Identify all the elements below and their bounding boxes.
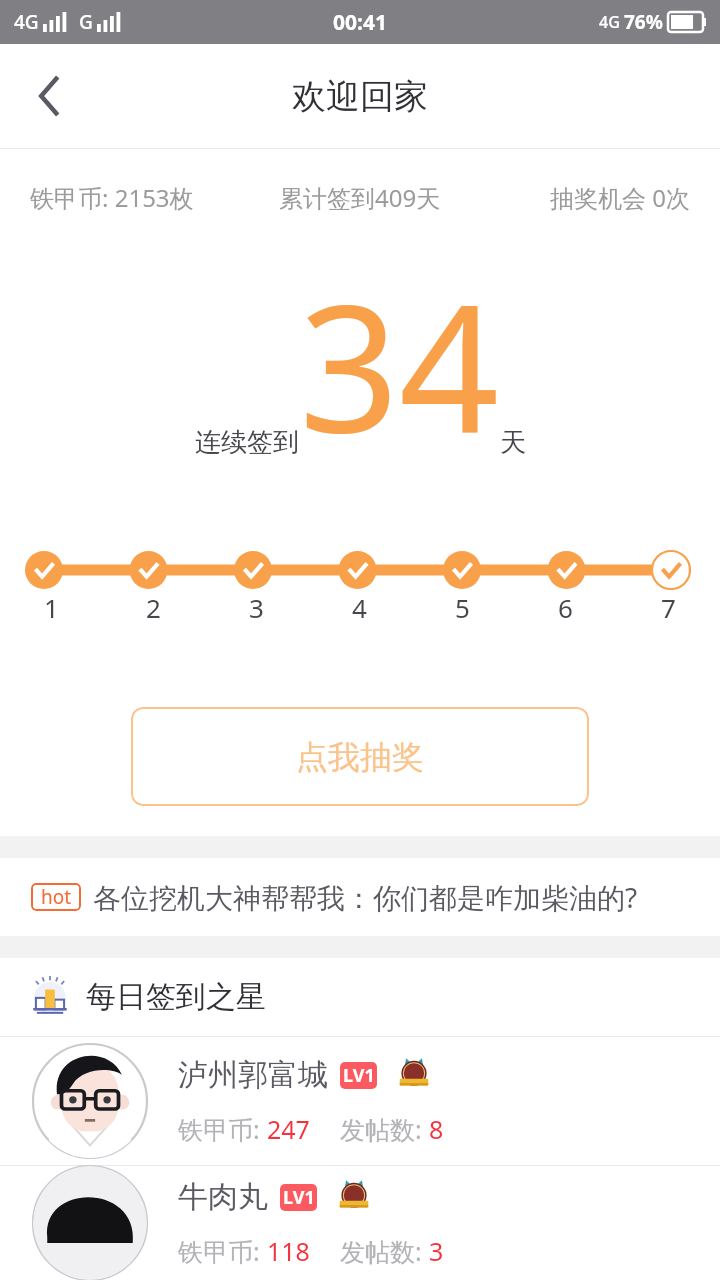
button[interactable]: 铁甲币: 2153枚 [30, 181, 250, 214]
button[interactable]: 点我抽奖 [131, 707, 589, 806]
staticText: 3 [249, 590, 264, 625]
button[interactable]: Back [22, 68, 78, 124]
staticText: 天 [500, 426, 526, 459]
staticText: 欢迎回家 [292, 75, 428, 118]
staticText: 发帖数: [340, 1234, 429, 1268]
staticText: 1 [44, 590, 59, 625]
staticText: 累计签到409天 [279, 181, 441, 214]
staticText: 34 [299, 245, 500, 473]
staticText: 发帖数: [340, 1112, 429, 1146]
staticText: G [79, 9, 93, 35]
staticText: hot [41, 884, 72, 910]
staticText: 点我抽奖 [296, 737, 424, 777]
staticText: 7 [661, 590, 676, 625]
button[interactable]: 牛肉丸 [0, 1166, 720, 1280]
staticText: 3 [429, 1234, 444, 1268]
staticText: 4 [352, 590, 367, 625]
button[interactable]: 累计签到409天 [250, 181, 470, 214]
staticText: 247 [267, 1112, 310, 1146]
staticText: 6 [558, 590, 573, 625]
staticText: 118 [267, 1234, 310, 1268]
staticText: 铁甲币: 2153枚 [30, 181, 194, 214]
staticText: 00:41 [333, 8, 387, 37]
button[interactable]: hot [0, 858, 720, 936]
staticText: 76% [624, 9, 663, 35]
staticText: 铁甲币: [178, 1234, 267, 1268]
staticText: LV1 [343, 1063, 375, 1088]
staticText: LV1 [283, 1185, 315, 1210]
staticText: 泸州郭富城 [178, 1056, 328, 1094]
staticText: 8 [429, 1112, 444, 1146]
staticText: 5 [455, 590, 470, 625]
staticText: 每日签到之星 [86, 978, 266, 1016]
staticText: 抽奖机会 0次 [550, 181, 690, 214]
staticText: 4G [14, 9, 39, 35]
staticText: 铁甲币: [178, 1112, 267, 1146]
button[interactable]: 抽奖机会 0次 [470, 181, 690, 214]
button[interactable]: 泸州郭富城 [0, 1037, 720, 1165]
staticText: 牛肉丸 [178, 1178, 268, 1216]
staticText: 2 [146, 590, 161, 625]
staticText: 4G [599, 11, 620, 33]
staticText: 各位挖机大神帮帮我：你们都是咋加柴油的? [93, 878, 638, 916]
staticText: 连续签到 [195, 426, 299, 459]
